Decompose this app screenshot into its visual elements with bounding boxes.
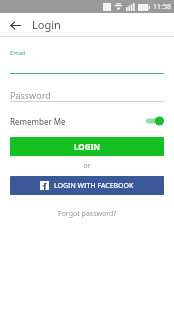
staticText: LOGIN [74,141,101,152]
staticText: Forgot password? [58,209,117,219]
staticText: Password [10,89,51,101]
button[interactable]: Back [6,16,24,34]
staticText: 11:58 [153,2,171,12]
staticText: Remember Me [10,116,66,127]
button[interactable]: Password [10,88,164,101]
button[interactable]: LOGIN [10,137,164,156]
staticText: Email [10,49,26,57]
staticText: Login [32,17,61,32]
button[interactable]: LOGIN WITH FACEBOOK [10,176,164,195]
button[interactable]: Remember Me [10,113,164,129]
staticText: or [10,161,164,171]
button[interactable]: Email [10,49,164,73]
button[interactable]: Forgot password? [10,207,164,221]
staticText: LOGIN WITH FACEBOOK [54,181,134,191]
